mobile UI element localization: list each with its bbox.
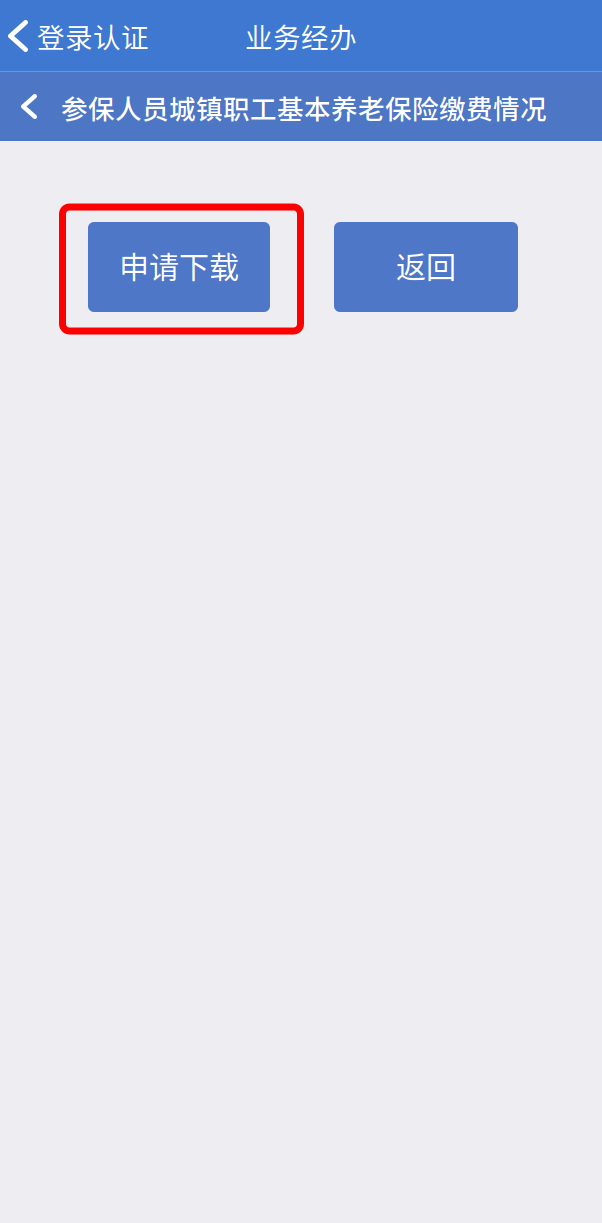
staticText: 业务经办 [245, 16, 357, 56]
staticText: 参保人员城镇职工基本养老保险缴费情况 [61, 88, 547, 127]
button[interactable]: 登录认证 [0, 0, 163, 72]
button[interactable]: 申请下载 [88, 222, 270, 312]
button[interactable]: 返回 [7, 72, 51, 141]
staticText: 返回 [396, 243, 456, 287]
button[interactable]: 业务经办 [231, 0, 371, 72]
staticText: 申请下载 [119, 243, 239, 287]
button[interactable]: 返回 [334, 222, 518, 312]
staticText: 登录认证 [37, 16, 149, 56]
